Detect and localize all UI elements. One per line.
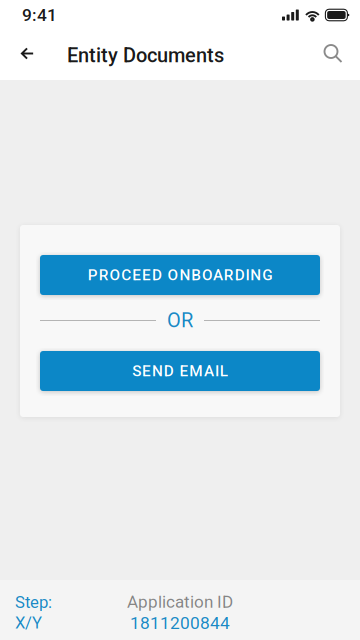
button[interactable]: SEND EMAIL xyxy=(40,351,320,391)
staticText: Step: xyxy=(15,592,52,612)
button[interactable]: Search xyxy=(311,31,355,75)
staticText: OR xyxy=(167,309,193,332)
staticText: X/Y xyxy=(15,613,42,632)
staticText: 1811200844 xyxy=(130,613,230,633)
staticText: Application ID xyxy=(127,592,233,612)
staticText: Entity Documents xyxy=(67,44,224,67)
staticText: 9:41 xyxy=(22,5,57,25)
button[interactable]: Back xyxy=(5,31,50,75)
staticText: PROCEED ONBOARDING xyxy=(88,266,272,284)
button[interactable]: PROCEED ONBOARDING xyxy=(40,255,320,295)
staticText: SEND EMAIL xyxy=(132,362,228,380)
